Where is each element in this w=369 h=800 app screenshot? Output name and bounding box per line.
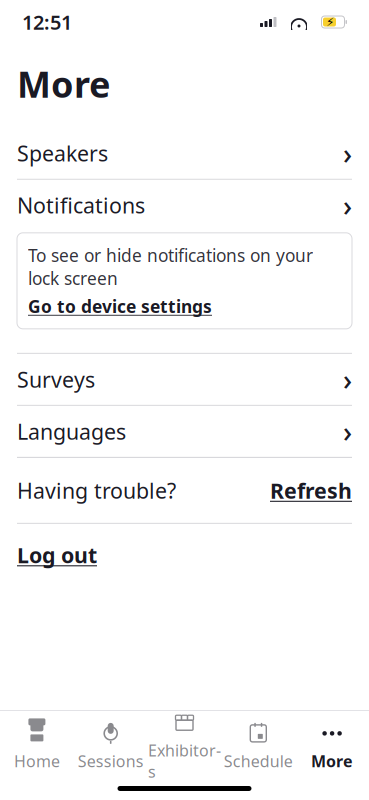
button[interactable]: More <box>295 723 369 771</box>
button[interactable]: Speakers <box>0 128 369 179</box>
button[interactable]: Sessions <box>74 723 148 771</box>
staticText: › <box>343 135 352 172</box>
staticText: ⚡︎ <box>326 15 334 29</box>
staticText: › <box>343 361 352 398</box>
staticText: Go to device settings <box>28 295 212 318</box>
button[interactable]: Schedule <box>221 723 295 771</box>
staticText: Home <box>14 750 60 772</box>
button[interactable]: Exhibitors <box>148 723 221 771</box>
button[interactable]: To see or hide notifications on your loc… <box>17 233 352 329</box>
staticText: More <box>17 60 110 108</box>
staticText: Surveys <box>17 365 95 393</box>
staticText: Exhibitors <box>148 740 221 782</box>
staticText: Speakers <box>17 139 108 167</box>
button[interactable]: Notifications <box>0 180 369 231</box>
staticText: Log out <box>17 541 97 569</box>
staticText: › <box>343 413 352 450</box>
staticText: Having trouble? <box>17 476 176 504</box>
staticText: More <box>311 750 353 772</box>
button[interactable]: Log out <box>0 524 369 586</box>
button[interactable]: Home <box>0 723 74 771</box>
staticText: Refresh <box>270 476 352 504</box>
staticText: Sessions <box>78 750 144 772</box>
button[interactable]: Surveys <box>0 354 369 405</box>
button[interactable]: Refresh <box>270 476 352 504</box>
staticText: Languages <box>17 417 126 445</box>
staticText: Notifications <box>17 191 145 219</box>
staticText: › <box>343 187 352 224</box>
staticText: To see or hide notifications on your loc… <box>28 244 313 290</box>
button[interactable]: Languages <box>0 406 369 457</box>
staticText: 12:51 <box>22 9 72 35</box>
staticText: Schedule <box>224 750 293 772</box>
